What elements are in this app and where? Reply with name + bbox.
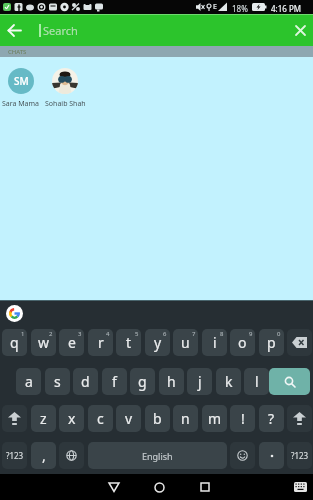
- button[interactable]: v: [116, 405, 141, 432]
- button[interactable]: Search: [39, 14, 239, 46]
- button[interactable]: i: [202, 329, 227, 356]
- staticText: j: [198, 372, 202, 391]
- staticText: g: [138, 372, 147, 391]
- button[interactable]: o: [230, 329, 255, 356]
- staticText: 4: [106, 330, 110, 338]
- staticText: 1: [21, 330, 25, 338]
- button[interactable]: d: [73, 368, 98, 395]
- staticText: p: [267, 333, 276, 352]
- staticText: !: [241, 409, 245, 428]
- staticText: SM: [14, 74, 29, 88]
- staticText: t: [126, 333, 132, 352]
- staticText: Search: [43, 23, 78, 38]
- button[interactable]: [194, 476, 216, 498]
- button[interactable]: !: [230, 405, 255, 432]
- button[interactable]: k: [216, 368, 241, 395]
- button[interactable]: z: [31, 405, 56, 432]
- staticText: x: [68, 409, 76, 428]
- button[interactable]: SM: [0, 68, 42, 109]
- staticText: i: [213, 333, 217, 352]
- button[interactable]: u: [173, 329, 198, 356]
- button[interactable]: [290, 478, 310, 496]
- button[interactable]: w: [31, 329, 56, 356]
- button[interactable]: ?: [259, 405, 284, 432]
- button[interactable]: f: [102, 368, 127, 395]
- staticText: ?: [268, 409, 275, 428]
- button[interactable]: ,: [31, 442, 56, 469]
- staticText: 7: [192, 330, 196, 338]
- button[interactable]: English: [88, 442, 227, 469]
- button[interactable]: g: [130, 368, 155, 395]
- staticText: e: [68, 333, 76, 352]
- staticText: q: [10, 333, 19, 352]
- staticText: Sohaib Shah: [45, 99, 86, 109]
- staticText: c: [97, 409, 104, 428]
- staticText: E: [213, 2, 217, 12]
- button[interactable]: [6, 305, 23, 322]
- staticText: z: [40, 409, 47, 428]
- staticText: 6: [163, 330, 167, 338]
- staticText: y: [154, 333, 162, 352]
- button[interactable]: [290, 20, 310, 40]
- button[interactable]: [230, 442, 255, 469]
- button[interactable]: e: [59, 329, 84, 356]
- staticText: ?123: [291, 450, 309, 461]
- button[interactable]: q: [2, 329, 27, 356]
- staticText: o: [238, 333, 247, 352]
- staticText: h: [167, 372, 176, 391]
- staticText: English: [142, 450, 173, 462]
- staticText: ,: [42, 446, 46, 465]
- button[interactable]: j: [187, 368, 212, 395]
- staticText: n: [181, 409, 190, 428]
- staticText: l: [255, 372, 259, 391]
- button[interactable]: x: [59, 405, 84, 432]
- button[interactable]: ?123: [2, 442, 27, 469]
- staticText: b: [153, 409, 162, 428]
- staticText: Sara Mama: [2, 99, 40, 109]
- button[interactable]: [103, 476, 125, 498]
- staticText: s: [54, 372, 61, 391]
- button[interactable]: p: [259, 329, 284, 356]
- staticText: f: [112, 372, 117, 391]
- button[interactable]: [59, 442, 84, 469]
- button[interactable]: n: [173, 405, 198, 432]
- staticText: 2: [49, 330, 53, 338]
- button[interactable]: m: [202, 405, 227, 432]
- staticText: v: [125, 409, 133, 428]
- staticText: 8: [220, 330, 224, 338]
- button[interactable]: c: [88, 405, 113, 432]
- staticText: u: [181, 333, 190, 352]
- staticText: 5: [135, 330, 139, 338]
- button[interactable]: l: [244, 368, 269, 395]
- button[interactable]: ?123: [287, 442, 312, 469]
- button[interactable]: b: [145, 405, 170, 432]
- staticText: 18%: [232, 3, 248, 14]
- button[interactable]: [269, 368, 310, 395]
- button[interactable]: [4, 20, 24, 40]
- staticText: r: [98, 333, 104, 352]
- staticText: ?123: [6, 450, 24, 461]
- staticText: 9: [249, 330, 253, 338]
- staticText: d: [81, 372, 90, 391]
- staticText: m: [208, 409, 222, 428]
- button[interactable]: y: [145, 329, 170, 356]
- button[interactable]: s: [45, 368, 70, 395]
- staticText: 3: [78, 330, 82, 338]
- button[interactable]: [259, 442, 284, 469]
- button[interactable]: h: [159, 368, 184, 395]
- staticText: 4:16 PM: [271, 3, 302, 14]
- button[interactable]: [287, 405, 312, 432]
- staticText: a: [25, 372, 33, 391]
- button[interactable]: [148, 476, 170, 498]
- staticText: 0: [277, 330, 281, 338]
- button[interactable]: [2, 405, 27, 432]
- staticText: w: [38, 333, 50, 352]
- staticText: CHATS: [8, 48, 27, 56]
- button[interactable]: [287, 329, 312, 356]
- button[interactable]: Sohaib Shah: [42, 68, 88, 109]
- button[interactable]: a: [16, 368, 41, 395]
- button[interactable]: t: [116, 329, 141, 356]
- staticText: k: [225, 372, 233, 391]
- button[interactable]: r: [88, 329, 113, 356]
